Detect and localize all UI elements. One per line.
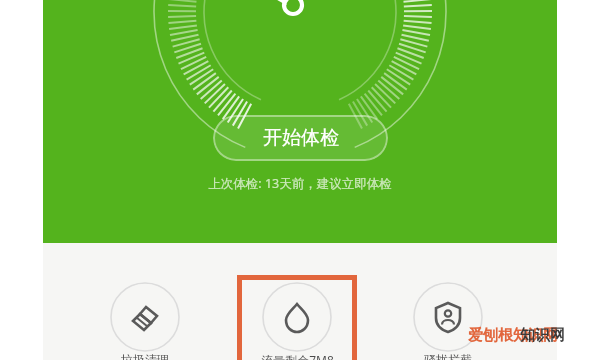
staticText: 骚扰拦截 xyxy=(424,352,472,360)
staticText: 知识网 xyxy=(520,326,565,345)
button[interactable]: 开始体检 xyxy=(213,115,388,161)
button[interactable]: Block harassment xyxy=(402,282,494,360)
staticText: 垃圾清理 xyxy=(121,352,169,360)
staticText: 爱刨根知识网 xyxy=(468,326,558,345)
staticText: 上次体检: 13天前，建议立即体检 xyxy=(208,175,392,192)
staticText: 流量剩余7M8 xyxy=(261,352,334,360)
button[interactable]: Junk cleanup xyxy=(99,282,191,360)
staticText: 开始体检 xyxy=(263,126,339,150)
button[interactable]: Data remaining xyxy=(251,282,343,360)
